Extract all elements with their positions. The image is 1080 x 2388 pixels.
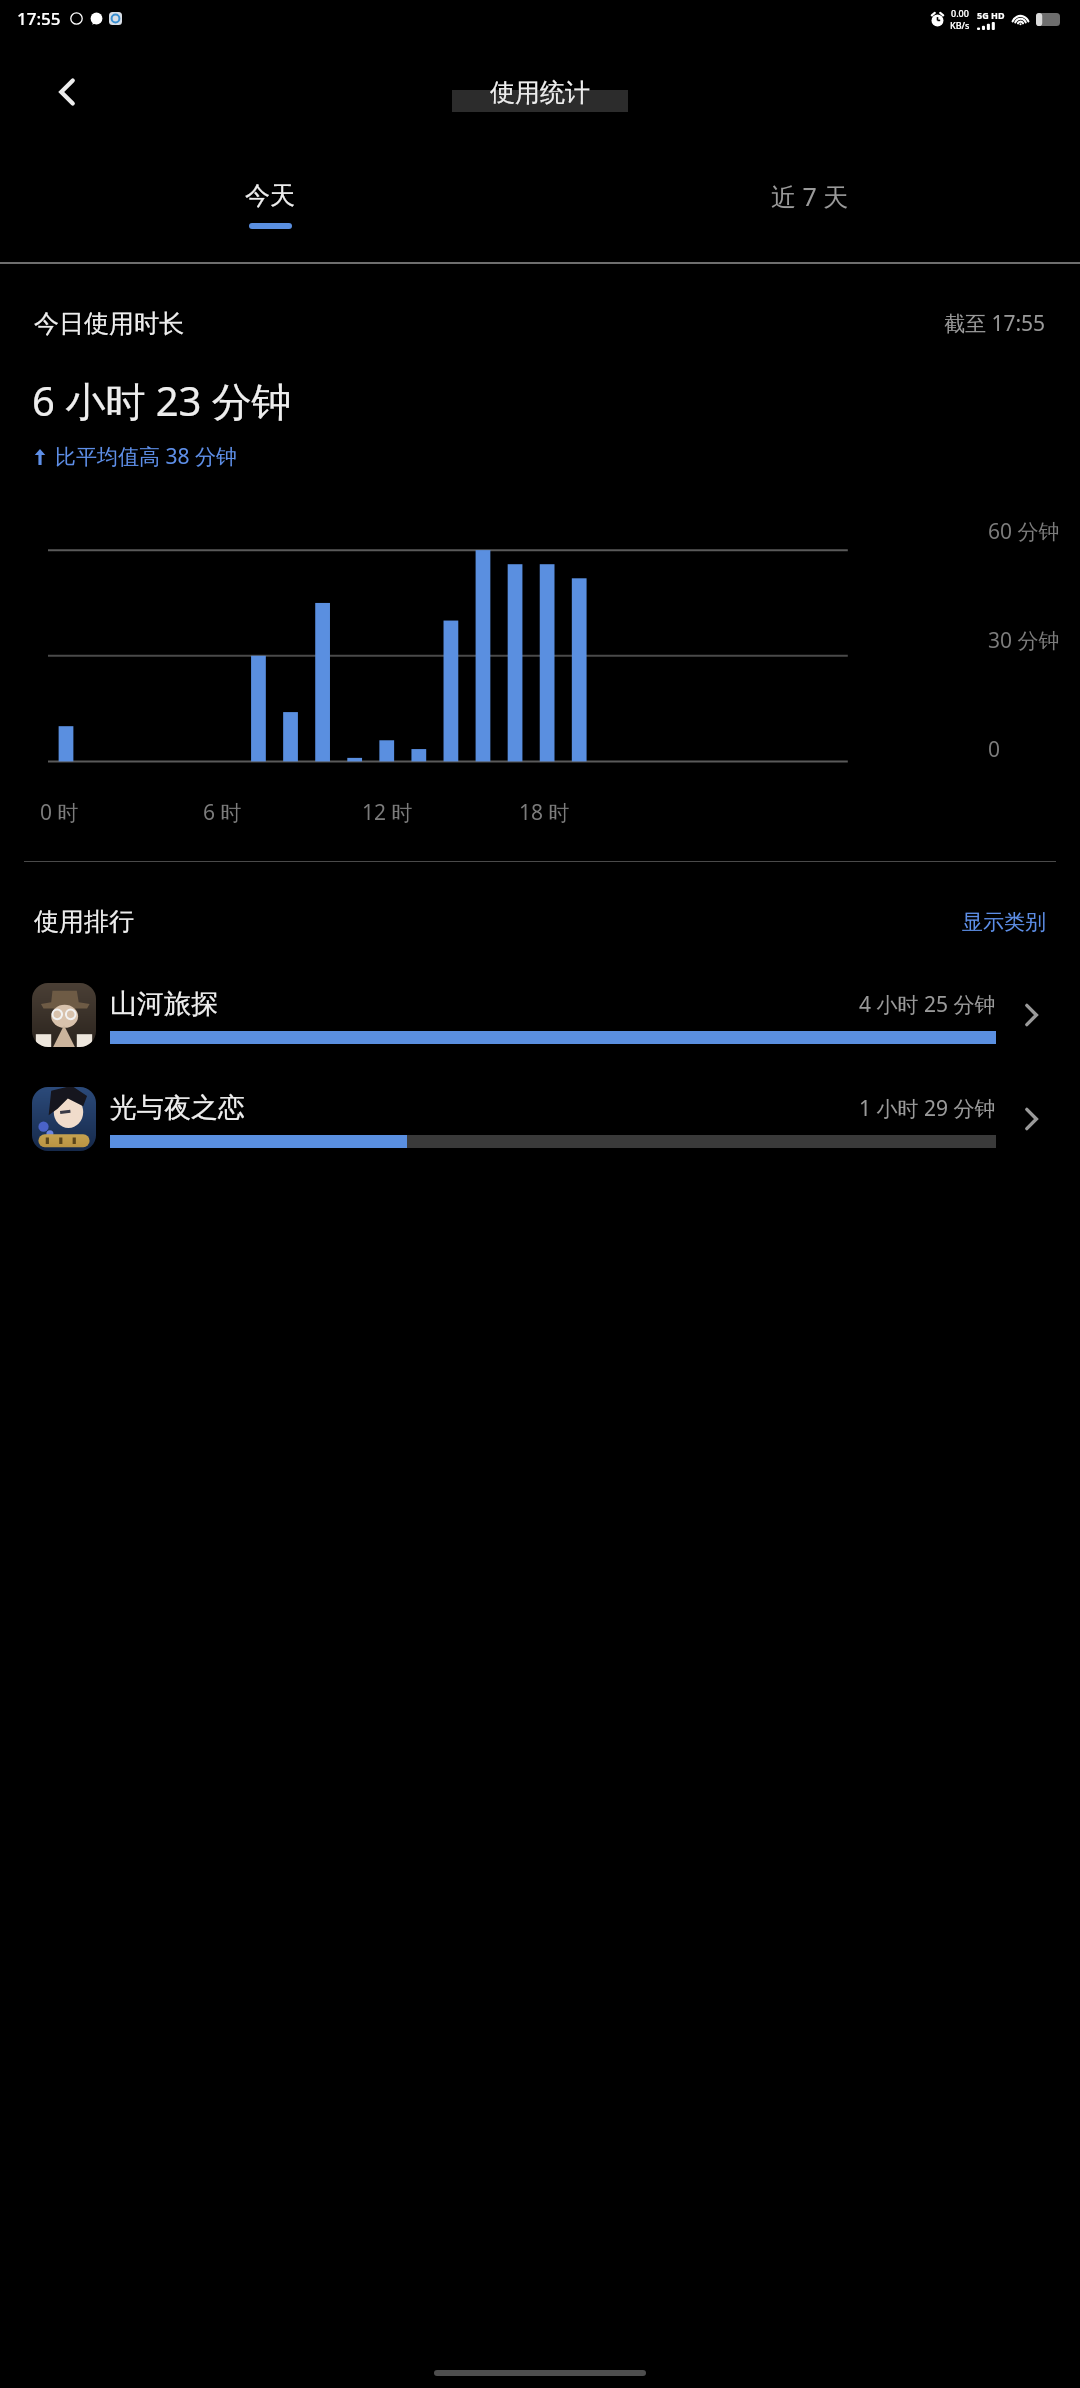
staticText: 0: [988, 735, 1001, 764]
staticText: 今日使用时长: [34, 308, 184, 339]
staticText: 12 时: [362, 798, 413, 827]
staticText: 0 时: [40, 798, 79, 827]
staticText: 30 分钟: [988, 626, 1060, 655]
button[interactable]: 光与夜之恋: [0, 1081, 1080, 1157]
staticText: 光与夜之恋: [110, 1091, 245, 1125]
button[interactable]: Back: [40, 64, 96, 120]
button[interactable]: 山河旅探: [0, 977, 1080, 1053]
staticText: 6 小时 23 分钟: [32, 373, 292, 428]
button[interactable]: 近 7 天: [540, 147, 1080, 262]
staticText: 4 小时 25 分钟: [859, 990, 996, 1019]
staticText: 今天: [245, 180, 295, 211]
staticText: KB/s: [950, 19, 970, 31]
staticText: 6 时: [203, 798, 242, 827]
staticText: 60 分钟: [988, 517, 1060, 546]
staticText: 截至 17:55: [944, 309, 1046, 338]
staticText: 0.00: [951, 7, 969, 19]
button[interactable]: 今天: [0, 147, 540, 262]
staticText: 1 小时 29 分钟: [859, 1094, 996, 1123]
staticText: 18 时: [519, 798, 570, 827]
staticText: 使用统计: [490, 77, 590, 108]
staticText: 近 7 天: [771, 179, 849, 213]
staticText: 5G HD: [977, 9, 1005, 21]
staticText: 显示类别: [962, 909, 1046, 935]
staticText: 比平均值高 38 分钟: [55, 442, 237, 471]
staticText: 使用排行: [34, 906, 134, 937]
staticText: 17:55: [17, 7, 61, 30]
button[interactable]: 显示类别: [962, 909, 1046, 935]
staticText: 山河旅探: [110, 987, 218, 1021]
